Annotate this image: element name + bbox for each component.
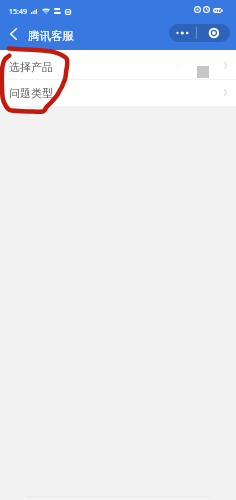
button[interactable]: More options xyxy=(169,24,230,42)
staticText: 15:49 xyxy=(9,7,27,17)
button[interactable]: Back xyxy=(2,19,24,50)
staticText: 腾讯客服 xyxy=(28,29,74,43)
button[interactable]: 问题类型 xyxy=(0,80,236,106)
staticText: 97 xyxy=(214,8,220,15)
staticText: 选择产品 xyxy=(9,60,53,74)
staticText: 问题类型 xyxy=(9,86,53,100)
button[interactable]: 选择产品 xyxy=(0,50,236,79)
